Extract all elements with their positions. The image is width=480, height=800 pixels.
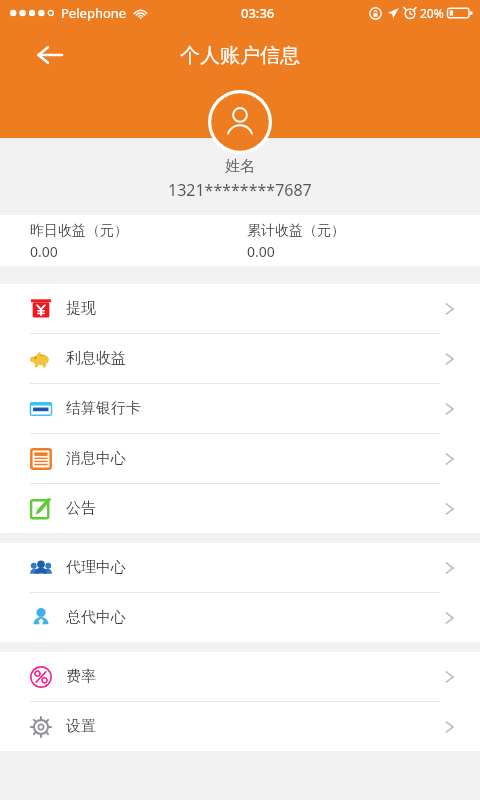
- button[interactable]: 利息收益: [0, 334, 480, 383]
- staticText: 费率: [66, 667, 96, 686]
- button[interactable]: 费率: [0, 652, 480, 701]
- staticText: 总代中心: [66, 608, 126, 627]
- button[interactable]: 总代中心: [0, 593, 480, 642]
- button[interactable]: 公告: [0, 484, 480, 533]
- staticText: 公告: [66, 499, 96, 518]
- staticText: 设置: [66, 717, 96, 736]
- staticText: 20%: [420, 5, 444, 21]
- staticText: 昨日收益（元）: [30, 222, 128, 240]
- button[interactable]: 设置: [0, 702, 480, 751]
- staticText: 累计收益（元）: [247, 222, 345, 240]
- staticText: 代理中心: [66, 558, 126, 577]
- staticText: 03:36: [241, 4, 275, 22]
- staticText: 提现: [66, 299, 96, 318]
- staticText: 1321********7687: [168, 179, 312, 201]
- button[interactable]: Back: [28, 33, 72, 77]
- staticText: 姓名: [225, 157, 255, 176]
- staticText: 0.00: [247, 242, 275, 261]
- staticText: 利息收益: [66, 349, 126, 368]
- button[interactable]: 消息中心: [0, 434, 480, 483]
- staticText: 个人账户信息: [180, 43, 300, 68]
- staticText: 0.00: [30, 242, 58, 261]
- staticText: 消息中心: [66, 449, 126, 468]
- button[interactable]: 提现: [0, 284, 480, 333]
- button[interactable]: 代理中心: [0, 543, 480, 592]
- button[interactable]: 结算银行卡: [0, 384, 480, 433]
- staticText: Pelephone: [61, 4, 127, 22]
- staticText: 结算银行卡: [66, 399, 141, 418]
